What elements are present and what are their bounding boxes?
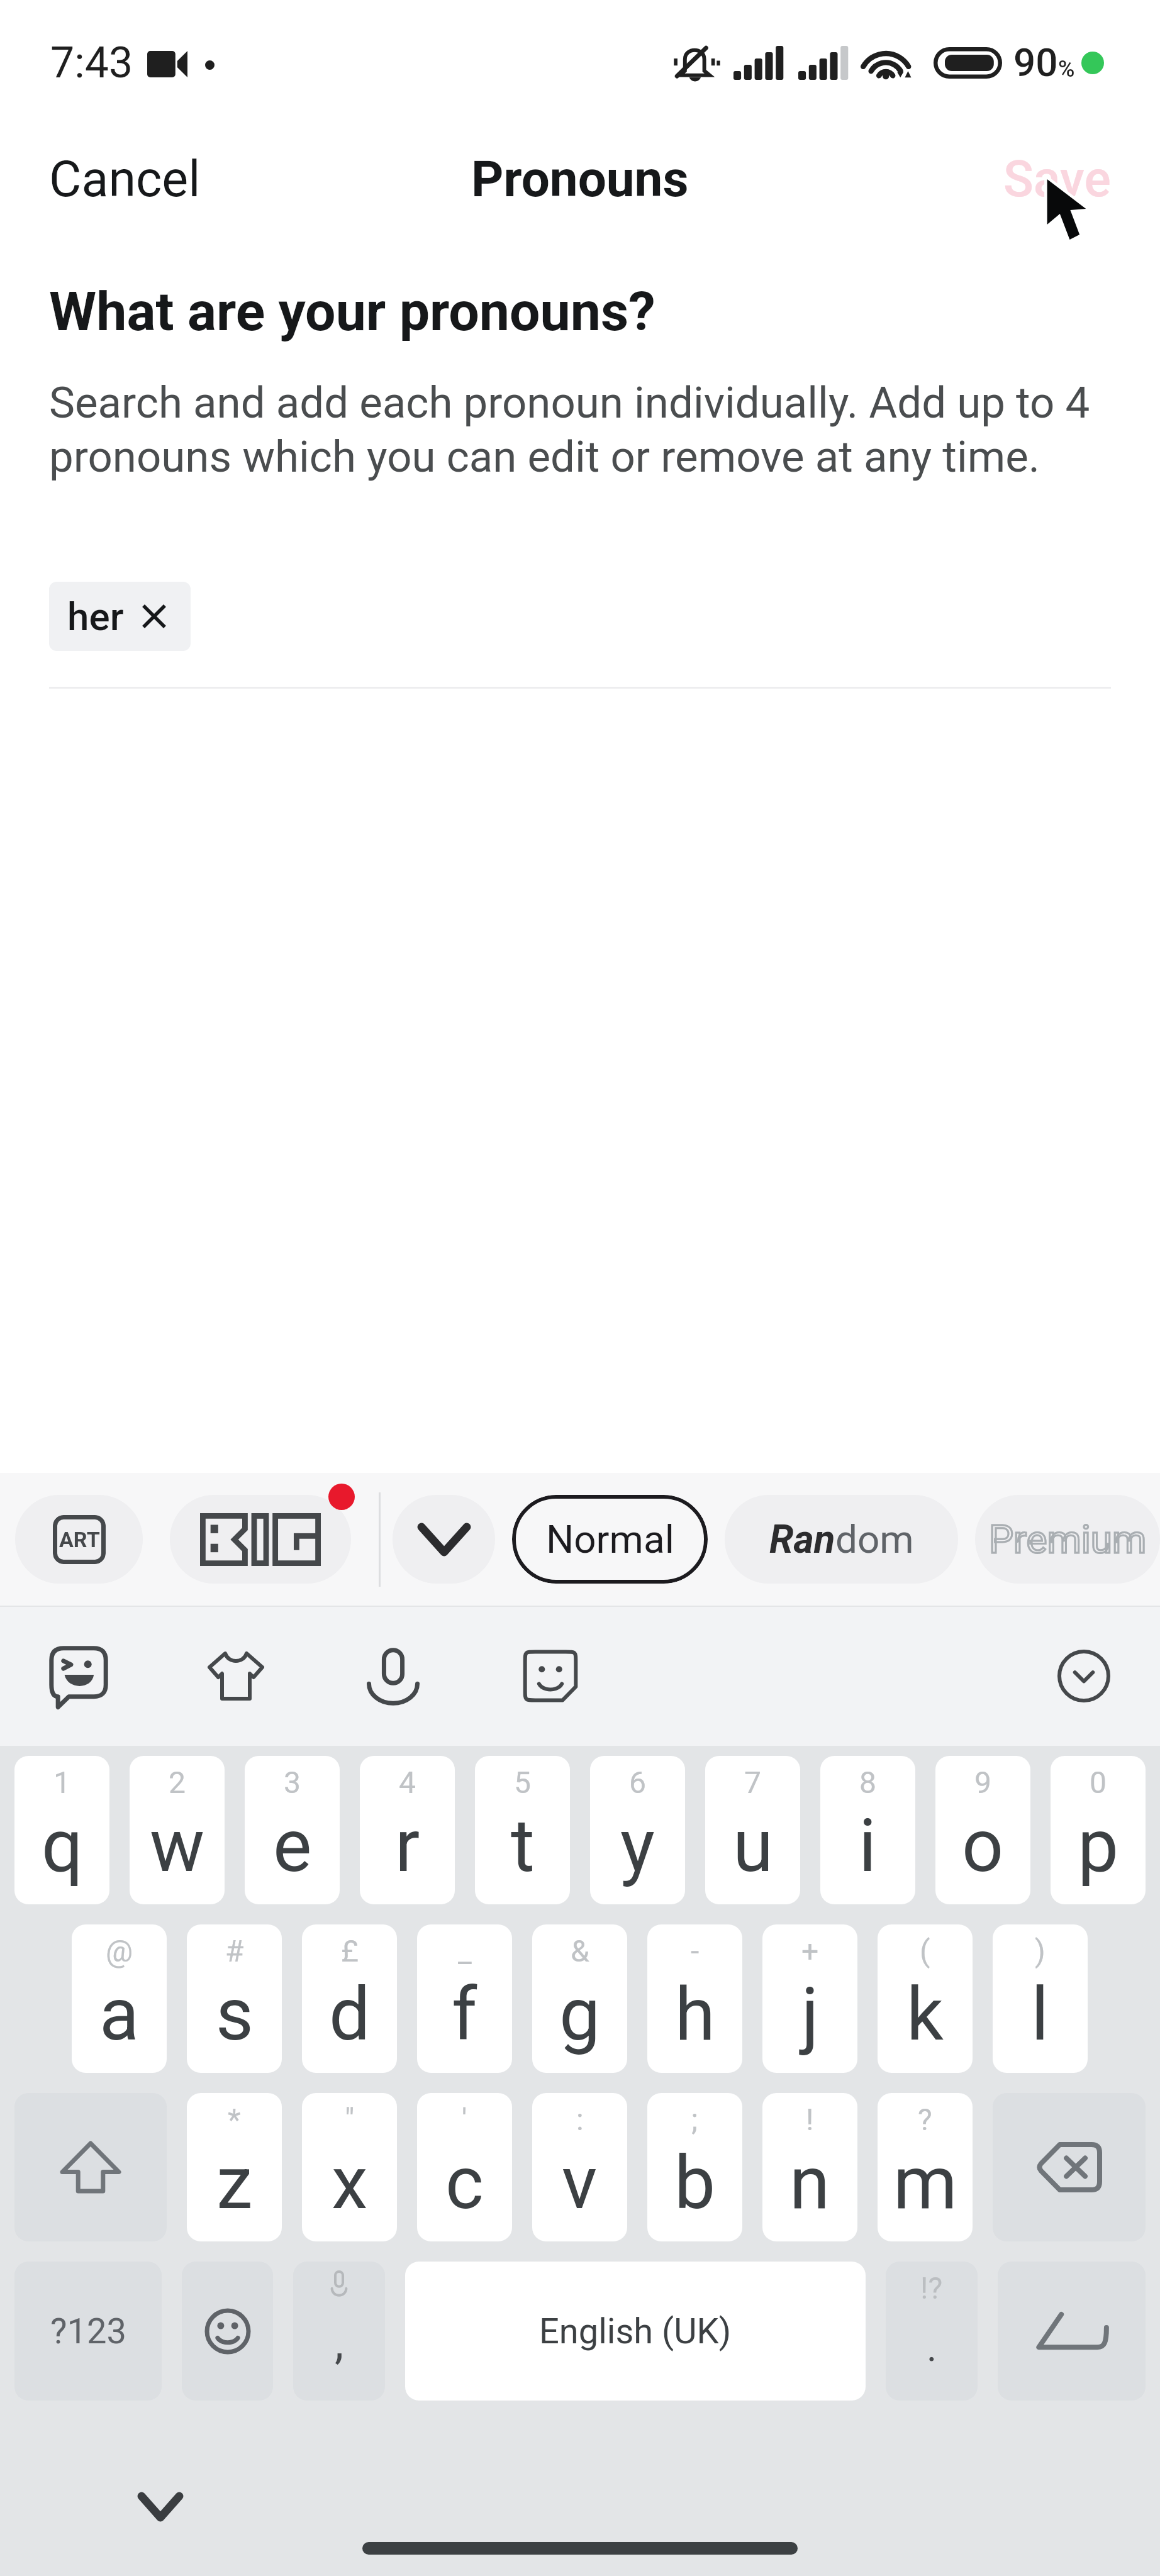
- button[interactable]: Ran: [725, 1495, 958, 1584]
- staticText: r: [395, 1803, 420, 1889]
- staticText: h: [675, 1972, 715, 2057]
- button[interactable]: Themes: [201, 1641, 270, 1711]
- staticText: ;: [691, 2102, 698, 2137]
- staticText: q: [42, 1803, 83, 1889]
- button[interactable]: Backspace: [993, 2093, 1146, 2241]
- staticText: Premium: [989, 1516, 1147, 1562]
- button[interactable]: Voice input: [359, 1641, 428, 1711]
- button[interactable]: 3: [245, 1756, 340, 1904]
- button[interactable]: Save: [954, 135, 1160, 224]
- button[interactable]: English (UK): [405, 2262, 866, 2401]
- button[interactable]: Collapse: [1049, 1641, 1118, 1711]
- button[interactable]: *: [187, 2093, 282, 2241]
- button[interactable]: 0: [1051, 1756, 1146, 1904]
- staticText: What are your pronouns?: [49, 280, 655, 343]
- staticText: Ran: [769, 1516, 835, 1562]
- staticText: 7:43: [50, 38, 133, 88]
- staticText: x: [332, 2140, 368, 2226]
- button[interactable]: +: [762, 1924, 857, 2073]
- staticText: #: [225, 1933, 244, 1968]
- staticText: ,: [335, 2316, 344, 2369]
- staticText: ?: [918, 2102, 932, 2137]
- staticText: i: [859, 1803, 877, 1889]
- button[interactable]: _: [417, 1924, 512, 2073]
- button[interactable]: Normal: [512, 1495, 708, 1584]
- staticText: 4: [399, 1765, 416, 1800]
- button[interactable]: 1: [14, 1756, 109, 1904]
- staticText: a: [99, 1972, 140, 2057]
- button[interactable]: :: [532, 2093, 627, 2241]
- staticText: b: [674, 2140, 716, 2226]
- button[interactable]: 7: [705, 1756, 800, 1904]
- button[interactable]: @: [72, 1924, 167, 2073]
- button[interactable]: Stickers: [44, 1641, 113, 1711]
- staticText: ART: [59, 1527, 100, 1552]
- button[interactable]: Art font: [15, 1495, 143, 1584]
- staticText: t: [511, 1803, 535, 1889]
- staticText: m: [893, 2140, 957, 2226]
- button[interactable]: Big text: [170, 1495, 351, 1584]
- button[interactable]: ;: [647, 2093, 742, 2241]
- staticText: !?: [920, 2270, 943, 2306]
- staticText: ?123: [50, 2311, 126, 2352]
- button[interactable]: Shift: [14, 2093, 167, 2241]
- button[interactable]: Hide keyboard: [116, 2472, 204, 2541]
- staticText: Pronouns: [471, 150, 689, 209]
- staticText: ": [345, 2102, 355, 2137]
- button[interactable]: Expand: [393, 1495, 495, 1584]
- button[interactable]: Period: [886, 2262, 978, 2401]
- button[interactable]: 2: [130, 1756, 225, 1904]
- button[interactable]: #: [187, 1924, 282, 2073]
- staticText: 1: [53, 1765, 70, 1800]
- button[interactable]: Emoji: [516, 1641, 585, 1711]
- button[interactable]: -: [647, 1924, 742, 2073]
- button[interactable]: £: [302, 1924, 397, 2073]
- staticText: e: [273, 1803, 312, 1889]
- button[interactable]: Emoji: [182, 2262, 273, 2401]
- staticText: 8: [859, 1765, 876, 1800]
- button[interactable]: her: [49, 582, 191, 651]
- staticText: Cancel: [49, 150, 201, 209]
- button[interactable]: Premium: [975, 1495, 1160, 1584]
- button[interactable]: (: [878, 1924, 973, 2073]
- staticText: (: [920, 1933, 930, 1968]
- staticText: dom: [835, 1516, 914, 1562]
- staticText: +: [801, 1933, 819, 1968]
- staticText: 7: [744, 1765, 761, 1800]
- button[interactable]: ): [993, 1924, 1088, 2073]
- button[interactable]: Symbols: [14, 2262, 162, 2401]
- staticText: v: [562, 2140, 598, 2226]
- button[interactable]: Comma: [293, 2262, 385, 2401]
- staticText: -: [691, 1933, 700, 1968]
- button[interactable]: Cancel: [0, 135, 250, 224]
- button[interactable]: !: [762, 2093, 857, 2241]
- button[interactable]: Enter: [998, 2262, 1146, 2401]
- staticText: 2: [169, 1765, 186, 1800]
- staticText: w: [150, 1803, 205, 1889]
- staticText: s: [216, 1972, 254, 2057]
- staticText: 6: [629, 1765, 646, 1800]
- button[interactable]: 5: [475, 1756, 570, 1904]
- button[interactable]: ": [302, 2093, 397, 2241]
- button[interactable]: 9: [935, 1756, 1030, 1904]
- staticText: 5: [514, 1765, 531, 1800]
- staticText: k: [906, 1972, 944, 2057]
- button[interactable]: 4: [360, 1756, 455, 1904]
- staticText: f: [452, 1972, 477, 2057]
- staticText: u: [733, 1803, 773, 1889]
- staticText: _: [458, 1933, 472, 1968]
- button[interactable]: 8: [820, 1756, 915, 1904]
- staticText: %: [1058, 56, 1075, 82]
- button[interactable]: &: [532, 1924, 627, 2073]
- staticText: 0: [1090, 1765, 1107, 1800]
- staticText: Save: [1003, 150, 1111, 209]
- staticText: Normal: [546, 1516, 674, 1562]
- button[interactable]: 6: [590, 1756, 685, 1904]
- staticText: d: [329, 1972, 371, 2057]
- staticText: n: [789, 2140, 830, 2226]
- staticText: 3: [284, 1765, 301, 1800]
- button[interactable]: ': [417, 2093, 512, 2241]
- staticText: Search and add each pronoun individually…: [49, 377, 1111, 482]
- button[interactable]: ?: [878, 2093, 973, 2241]
- staticText: English (UK): [539, 2311, 732, 2352]
